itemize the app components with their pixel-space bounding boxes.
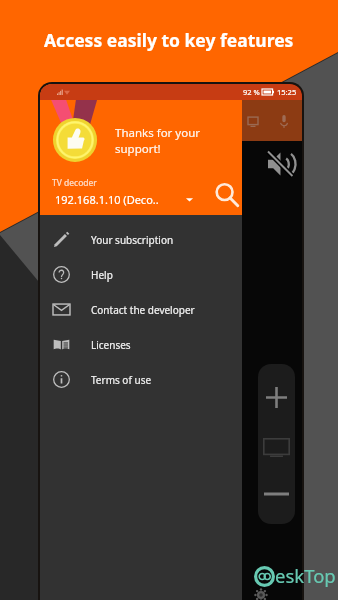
staticText: Thanks for your support! bbox=[115, 125, 201, 156]
button[interactable]: Contact the developer bbox=[40, 292, 242, 327]
button[interactable]: Help bbox=[40, 257, 242, 292]
button[interactable]: Volume up bbox=[258, 364, 295, 431]
staticText: Your subscription bbox=[91, 233, 174, 247]
staticText: Contact the developer bbox=[91, 303, 195, 317]
button[interactable]: 192.168.1.10 (Deco.. bbox=[55, 192, 194, 207]
staticText: 192.168.1.10 (Deco.. bbox=[55, 192, 159, 207]
button[interactable]: Screenshot bbox=[240, 108, 266, 134]
button[interactable]: Screen bbox=[258, 431, 295, 463]
staticText: 92 % bbox=[243, 87, 260, 97]
button[interactable]: Terms of use bbox=[40, 362, 242, 397]
button[interactable]: Licenses bbox=[40, 327, 242, 362]
staticText: Licenses bbox=[91, 338, 131, 352]
staticText: TV decoder bbox=[52, 177, 97, 189]
button[interactable]: Voice bbox=[271, 108, 297, 134]
staticText: eskTop bbox=[275, 563, 336, 588]
button[interactable]: Your subscription bbox=[40, 222, 242, 257]
button[interactable]: Mute bbox=[264, 147, 298, 181]
staticText: Terms of use bbox=[91, 373, 152, 387]
button[interactable]: Search bbox=[210, 178, 244, 212]
button[interactable]: Volume down bbox=[258, 463, 295, 524]
staticText: 15:25 bbox=[277, 87, 297, 97]
staticText: Access easily to key features bbox=[44, 28, 294, 52]
staticText: Help bbox=[91, 268, 113, 282]
